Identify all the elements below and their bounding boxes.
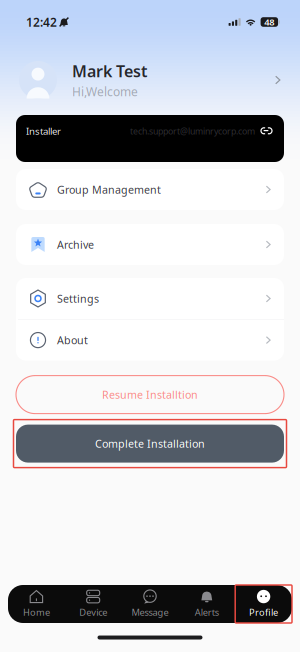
staticText: Message <box>131 606 168 618</box>
button[interactable]: Mark Test <box>0 57 300 103</box>
staticText: Device <box>79 606 107 618</box>
button[interactable]: Settings <box>16 278 284 319</box>
button[interactable]: Profile <box>235 585 292 623</box>
staticText: Group Management <box>57 182 161 197</box>
staticText: Profile <box>249 606 278 618</box>
staticText: 12:42 <box>26 14 57 30</box>
staticText: tech.support@luminrycorp.com <box>130 125 255 137</box>
staticText: Mark Test <box>72 60 147 82</box>
button[interactable]: Message <box>122 585 178 623</box>
staticText: Resume Installtion <box>102 387 198 402</box>
staticText: 48 <box>264 16 274 28</box>
staticText: Settings <box>57 291 99 306</box>
button[interactable]: Complete Installation <box>13 420 286 468</box>
button[interactable]: Device <box>65 585 122 623</box>
staticText: About <box>57 333 88 347</box>
staticText: Hi,Welcome <box>72 84 138 100</box>
button[interactable]: Resume Installtion <box>16 376 284 414</box>
staticText: Complete Installation <box>95 436 205 451</box>
staticText: Home <box>23 606 50 618</box>
button[interactable]: Group Management <box>16 169 284 210</box>
staticText: Installer <box>26 124 61 138</box>
staticText: Archive <box>57 237 94 252</box>
button[interactable]: About <box>16 320 284 361</box>
button[interactable]: Archive <box>16 224 284 265</box>
button[interactable]: Home <box>8 585 65 623</box>
button[interactable]: Alerts <box>178 585 235 623</box>
staticText: Alerts <box>195 606 219 618</box>
